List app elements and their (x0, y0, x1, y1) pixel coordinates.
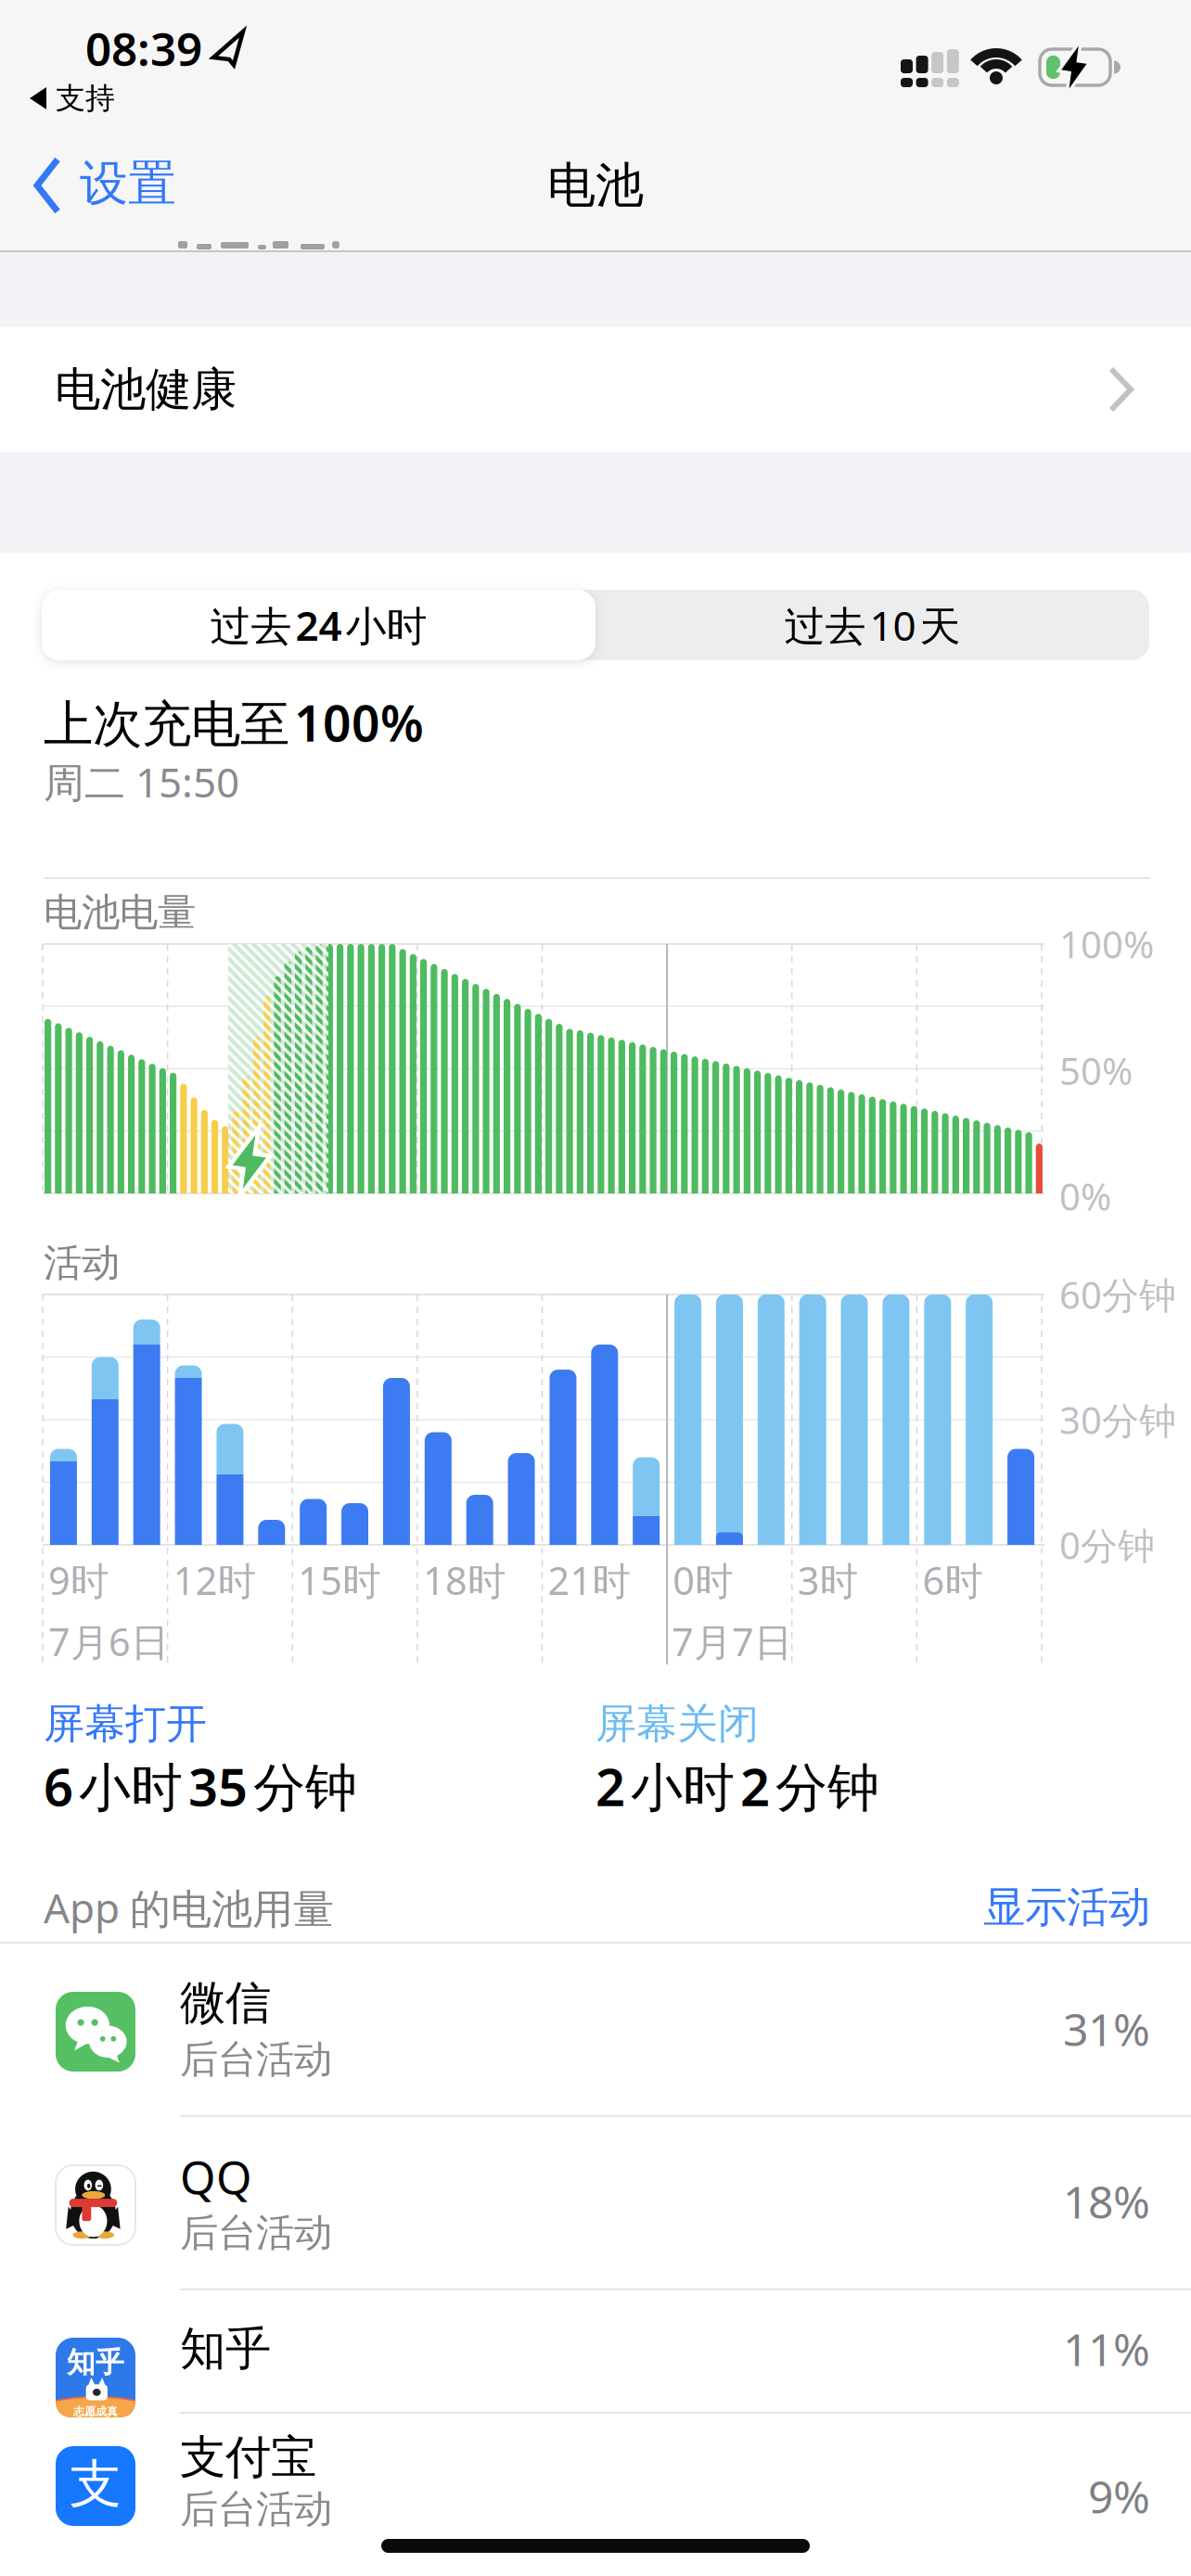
staticText: 微信 (180, 1975, 271, 2031)
staticText: 知乎 (67, 2345, 124, 2380)
staticText: 活动 (44, 1239, 120, 1287)
staticText: 过去 10 天 (784, 598, 960, 652)
button[interactable]: QQ (0, 2117, 1191, 2576)
staticText: 0分钟 (1059, 1520, 1155, 1569)
staticText: 08:39 (85, 18, 202, 79)
staticText: 0% (1059, 1172, 1111, 1221)
staticText: 6时 (922, 1555, 983, 1606)
staticText: 21时 (548, 1555, 630, 1606)
button[interactable]: 过去 24 小时 (42, 590, 595, 660)
staticText: 知乎 (180, 2321, 271, 2377)
staticText: 100% (1059, 919, 1154, 969)
staticText: 0时 (673, 1555, 733, 1606)
staticText: 屏幕打开 (44, 1699, 207, 1749)
staticText: 3时 (798, 1555, 858, 1606)
staticText: 31% (1063, 1999, 1150, 2058)
staticText: 支 (70, 2452, 122, 2516)
button[interactable]: 电池健康 (0, 327, 1191, 2576)
staticText: 电池健康 (55, 361, 237, 418)
staticText: 电池 (547, 156, 644, 215)
staticText: 支持 (56, 80, 115, 116)
staticText: QQ (180, 2146, 252, 2207)
staticText: 9% (1088, 2467, 1150, 2526)
staticText: 周二 15:50 (44, 755, 239, 809)
staticText: 18时 (423, 1555, 505, 1606)
staticText: 7月7日 (672, 1616, 792, 1667)
staticText: 后台活动 (180, 2036, 332, 2083)
button[interactable]: 知乎 (0, 2290, 1191, 2576)
button[interactable]: 过去 10 天 (595, 590, 1149, 660)
staticText: 过去 24 小时 (210, 598, 427, 652)
staticText: App 的电池用量 (44, 1880, 334, 1935)
button[interactable]: 显示活动 (872, 1876, 1150, 1939)
button[interactable]: 支持 (28, 80, 1191, 2576)
staticText: 11% (1063, 2319, 1150, 2378)
staticText: 支付宝 (180, 2429, 316, 2485)
staticText: 12时 (173, 1555, 256, 1606)
staticText: 后台活动 (180, 2486, 332, 2533)
staticText: 18% (1063, 2172, 1150, 2231)
staticText: 显示活动 (983, 1882, 1150, 1933)
staticText: 电池电量 (44, 889, 196, 936)
staticText: 7月6日 (48, 1616, 169, 1667)
staticText: 30分钟 (1059, 1395, 1176, 1444)
staticText: 60分钟 (1059, 1270, 1176, 1319)
staticText: 6 小时 35 分钟 (44, 1751, 357, 1820)
staticText: 屏幕关闭 (595, 1699, 759, 1749)
staticText: 50% (1059, 1046, 1133, 1095)
staticText: 2 小时 2 分钟 (595, 1751, 879, 1820)
staticText: 15时 (298, 1555, 380, 1606)
staticText: 上次充电至 100% (44, 690, 424, 755)
button[interactable]: 设置 (32, 154, 1191, 2576)
staticText: 9时 (48, 1555, 109, 1606)
button[interactable]: 支 (0, 2414, 1191, 2576)
button[interactable]: 微信 (0, 1944, 1191, 2576)
staticText: 设置 (80, 154, 176, 213)
staticText: 后台活动 (180, 2209, 332, 2256)
staticText: 志愿成真 (73, 2405, 118, 2418)
